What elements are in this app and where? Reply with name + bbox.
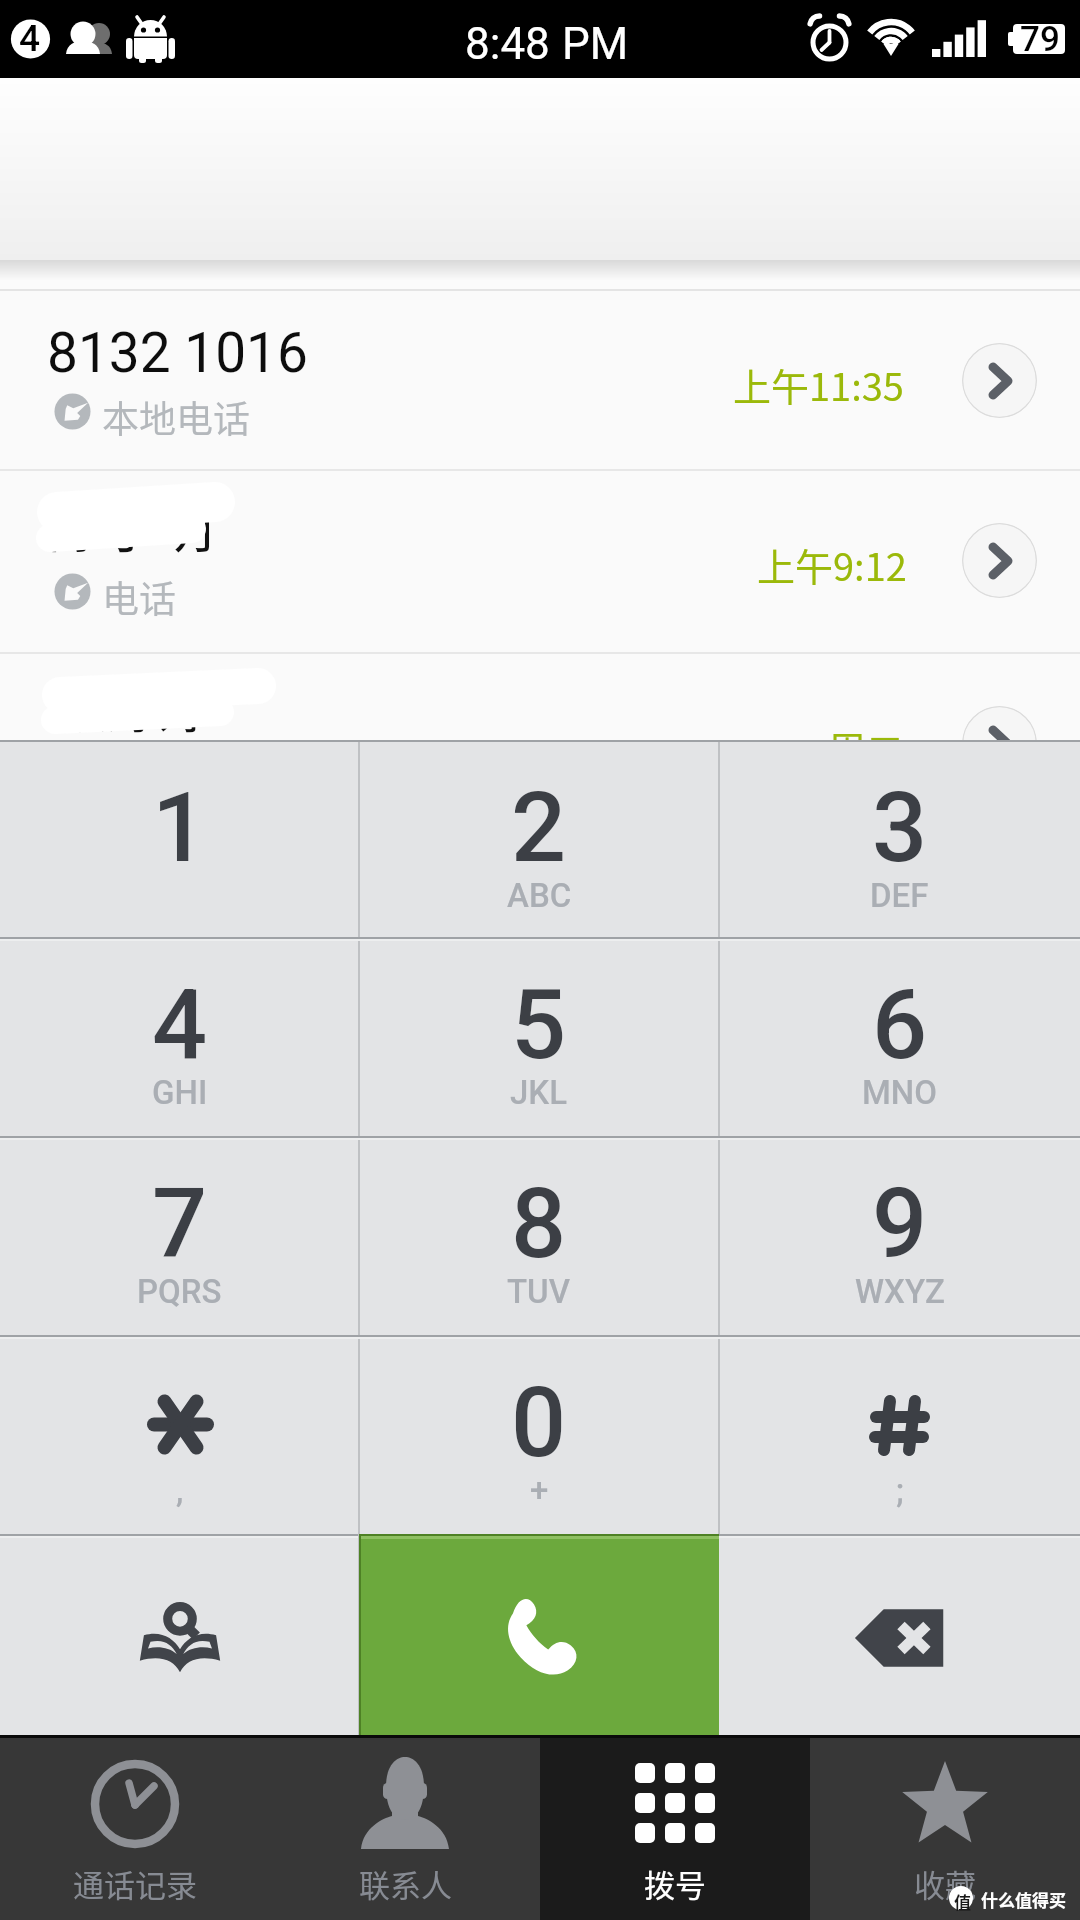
staticText: + [530,1471,549,1510]
staticText: 通话记录 [73,1861,197,1906]
staticText: 上午11:35 [733,357,904,412]
button[interactable]: Pound [719,1337,1080,1534]
staticText: 3 [872,771,928,885]
staticText: 值 [954,1889,971,1914]
staticText: 上午9:12 [757,537,907,592]
staticText: PQRS [137,1272,222,1311]
staticText: 8:48 [465,18,550,70]
staticText: 2 [511,771,567,885]
staticText: ; [896,1471,904,1510]
button[interactable]: Call details [962,706,1037,781]
staticText: 8132 1016 [47,321,308,385]
staticText: 5 [511,968,567,1082]
staticText: 本地电话 [102,390,250,444]
staticText: WXYZ [855,1272,945,1311]
staticText: MNO [862,1073,938,1112]
staticText: 收藏 [914,1861,976,1906]
button[interactable]: 2 [359,742,719,937]
button[interactable]: Call [359,1534,719,1735]
staticText: 6 [872,968,928,1082]
staticText: PM [562,18,629,70]
button[interactable]: 陈小明 [0,471,1080,652]
button[interactable]: 7 [0,1138,359,1335]
button[interactable]: 4 [0,939,359,1136]
staticText: 9 [872,1167,928,1281]
button[interactable]: 6 [719,939,1080,1136]
staticText: 联系人 [359,1861,452,1906]
button[interactable]: 拨号 [540,1735,810,1920]
button[interactable]: 5 [359,939,719,1136]
staticText: , [176,1471,184,1510]
button[interactable]: 9 [719,1138,1080,1335]
staticText: 周二 [828,720,905,775]
staticText: JKL [510,1073,568,1112]
staticText: ABC [507,876,572,915]
staticText: 拨号 [644,1861,706,1906]
button[interactable]: 8 [359,1138,719,1335]
button[interactable]: Backspace [719,1534,1080,1735]
staticText: GHI [152,1073,208,1112]
staticText: 7 [152,1167,208,1281]
staticText: 陈小明 [48,483,214,563]
staticText: 电话 [102,570,176,624]
button[interactable]: 8132 1016 [0,291,1080,469]
staticText: 张婷婷 [55,668,212,743]
staticText: 4 [19,17,41,60]
staticText: 8 [511,1167,567,1281]
button[interactable]: 3 [719,742,1080,937]
staticText: 什么值得买 [981,1887,1066,1912]
button[interactable]: Contacts [0,1534,358,1735]
button[interactable]: 0 [359,1337,719,1534]
staticText: TUV [507,1272,571,1311]
button[interactable]: 通话记录 [0,1735,270,1920]
staticText: 4 [152,968,208,1082]
button[interactable]: 1 [0,742,359,937]
button[interactable]: Call details [962,523,1037,598]
staticText: DEF [870,876,929,915]
button[interactable]: Star [0,1337,359,1534]
staticText: 1 [152,771,208,885]
staticText: 79 [1020,19,1060,60]
staticText: 0 [511,1366,567,1480]
button[interactable]: Call details [962,343,1037,418]
button[interactable]: 张婷婷 [0,654,1080,740]
button[interactable]: 收藏 [810,1735,1080,1920]
button[interactable]: 联系人 [270,1735,540,1920]
